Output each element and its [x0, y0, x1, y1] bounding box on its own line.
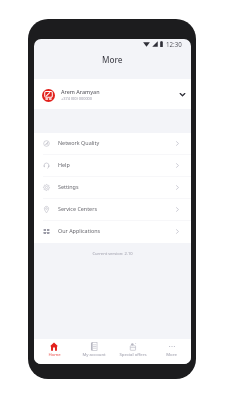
staticText: Network Quality — [58, 139, 100, 146]
button[interactable]: Our Applications — [34, 221, 191, 243]
staticText: Settings — [58, 183, 79, 190]
button[interactable]: Settings — [34, 177, 191, 199]
staticText: Home — [48, 351, 61, 357]
staticText: Current version: 2.10 — [92, 251, 133, 257]
button[interactable]: Service Centers — [34, 199, 191, 221]
button[interactable]: Help — [34, 155, 191, 177]
button[interactable]: My account — [74, 339, 113, 364]
button[interactable]: Special offers — [113, 339, 152, 364]
button[interactable]: Arem Aramyan — [34, 79, 191, 109]
button[interactable]: More — [152, 339, 191, 364]
button[interactable]: Home — [34, 339, 74, 364]
staticText: Our Applications — [58, 227, 101, 234]
staticText: My account — [82, 351, 106, 357]
staticText: +374 (00) 000000 — [61, 96, 93, 101]
button[interactable]: Network Quality — [34, 133, 191, 155]
staticText: Help — [58, 161, 70, 168]
staticText: 12:30 — [166, 40, 182, 48]
staticText: Arem Aramyan — [61, 88, 100, 95]
staticText: Special offers — [119, 351, 147, 357]
staticText: More — [102, 54, 123, 65]
staticText: More — [166, 351, 177, 357]
staticText: Service Centers — [58, 205, 97, 212]
